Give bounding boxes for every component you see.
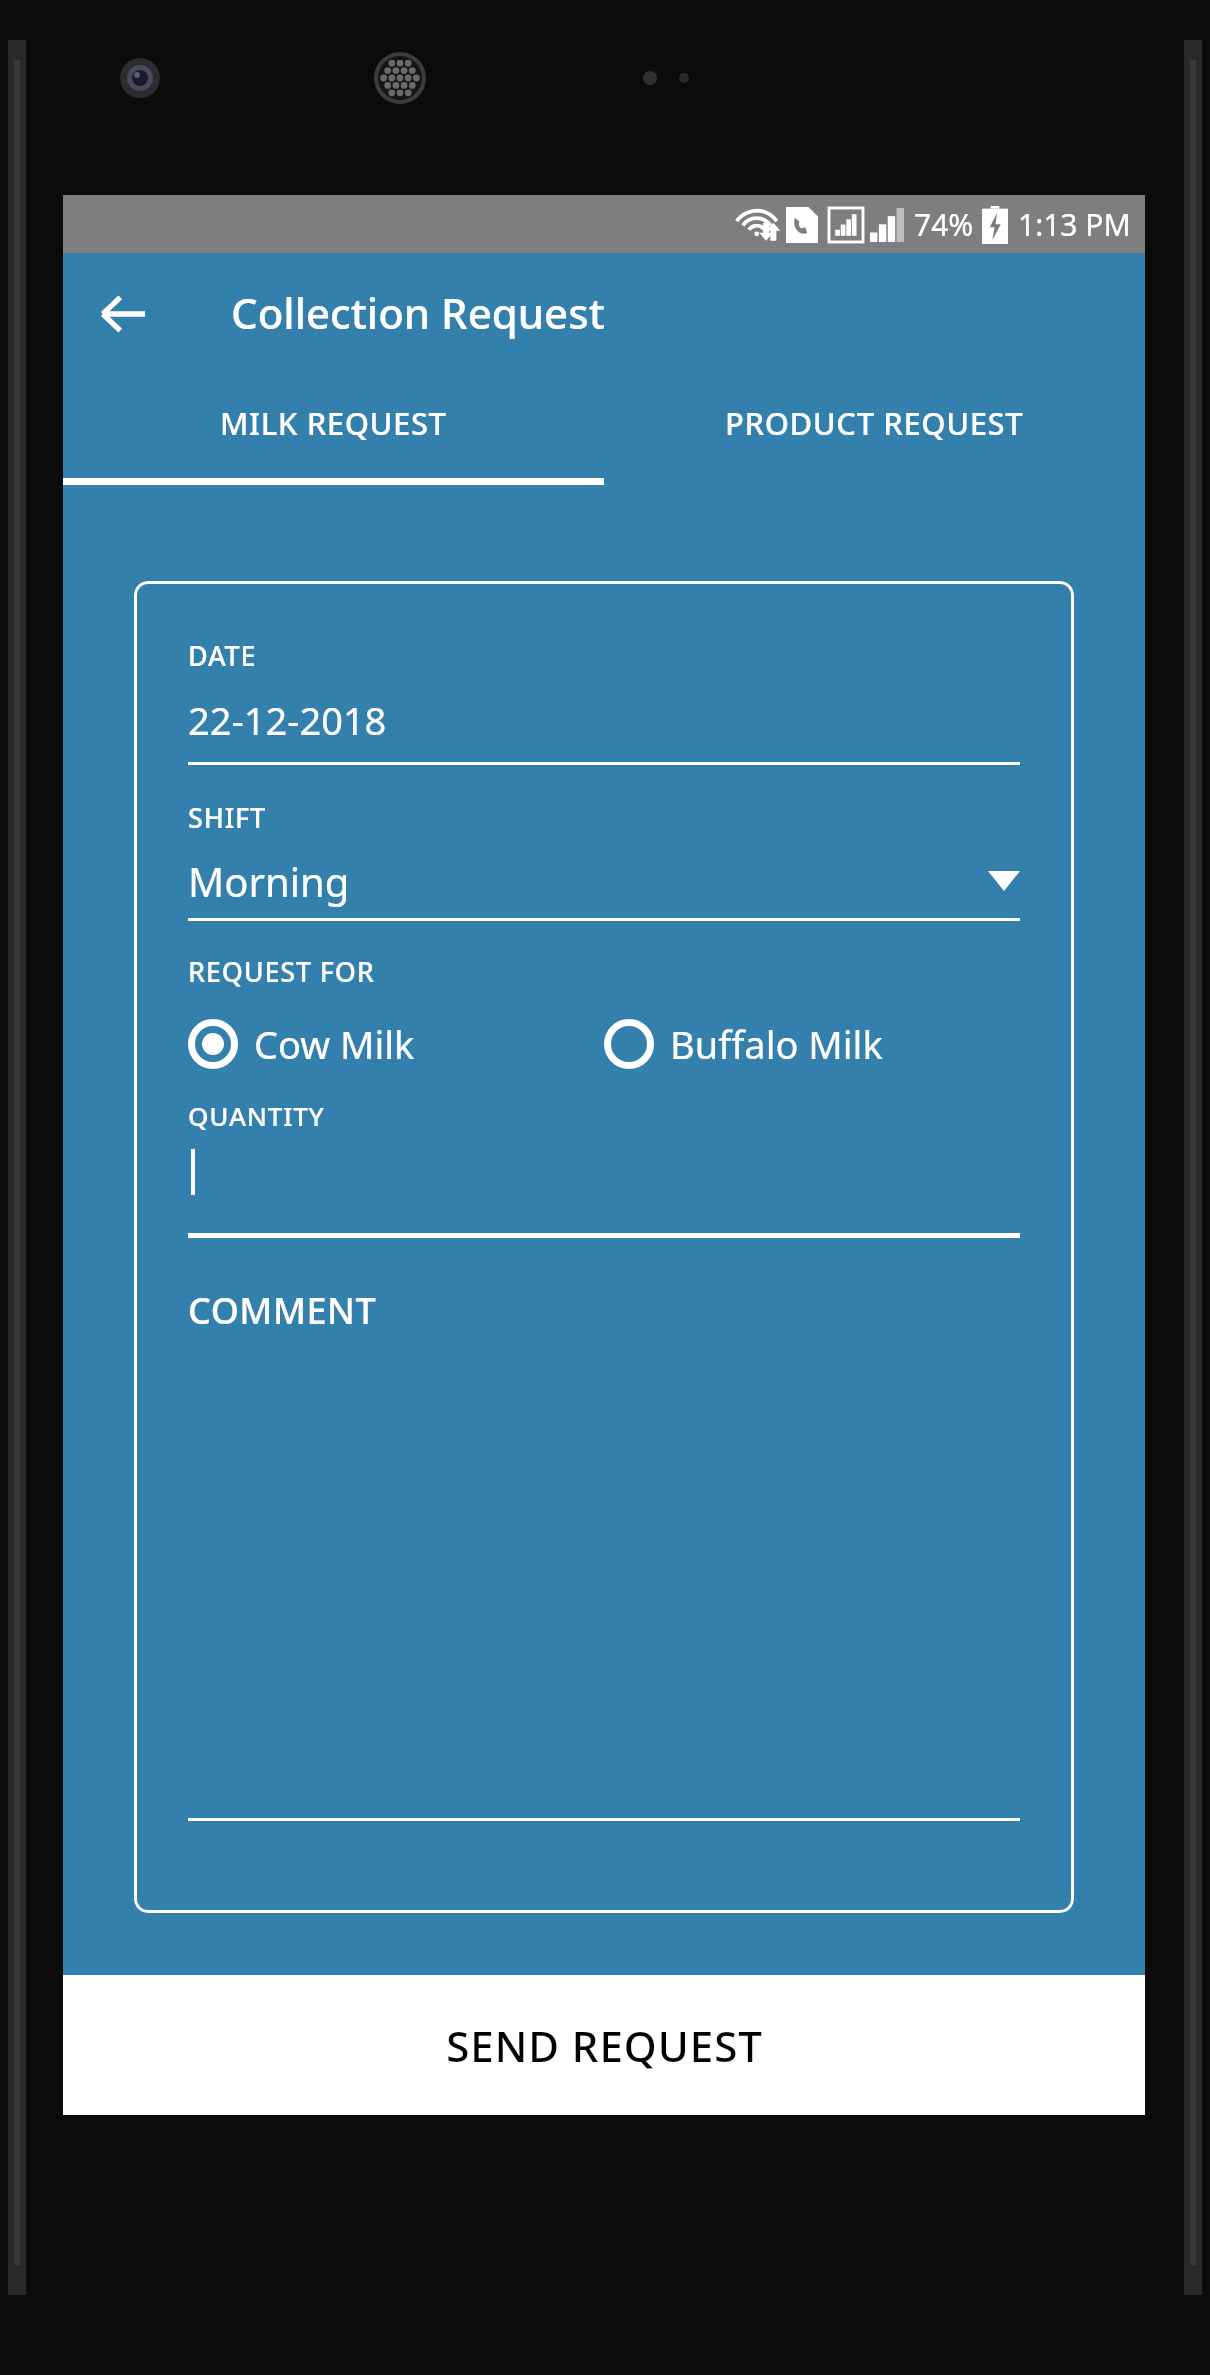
staticText: SEND REQUEST: [446, 2017, 763, 2074]
staticText: Cow Milk: [254, 1018, 415, 1070]
staticText: PRODUCT REQUEST: [725, 402, 1024, 444]
staticText: REQUEST FOR: [188, 953, 375, 990]
staticText: Buffalo Milk: [670, 1018, 883, 1070]
staticText: 74%: [914, 204, 974, 245]
button[interactable]: Morning: [188, 854, 1020, 921]
staticText: SHIFT: [188, 799, 267, 836]
button[interactable]: Back: [85, 276, 161, 352]
button[interactable]: Buffalo Milk: [604, 1012, 1020, 1076]
staticText: 22-12-2018: [188, 694, 387, 746]
button[interactable]: PRODUCT REQUEST: [604, 375, 1145, 490]
staticText: MILK REQUEST: [220, 402, 447, 444]
button[interactable]: Cow Milk: [188, 1012, 604, 1076]
staticText: 1:13 PM: [1018, 204, 1131, 245]
button[interactable]: SEND REQUEST: [63, 1975, 1145, 2115]
button[interactable]: [188, 1147, 1020, 1238]
staticText: COMMENT: [188, 1286, 377, 1335]
button[interactable]: MILK REQUEST: [63, 375, 604, 490]
button[interactable]: COMMENT: [188, 1286, 1020, 1883]
staticText: Collection Request: [231, 284, 605, 341]
staticText: Morning: [188, 854, 350, 908]
button[interactable]: 22-12-2018: [188, 694, 1020, 765]
staticText: QUANTITY: [188, 1098, 325, 1133]
staticText: DATE: [188, 637, 257, 674]
